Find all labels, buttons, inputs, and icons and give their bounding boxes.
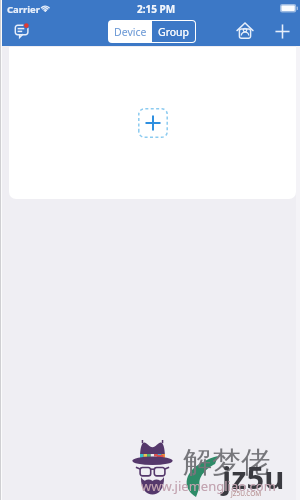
button[interactable]: Group <box>152 21 195 42</box>
staticText: 解梦佬 <box>183 444 270 481</box>
button[interactable]: Add <box>272 21 293 42</box>
staticText: www.jiemengliao.com <box>141 477 276 495</box>
staticText: Device <box>114 25 147 39</box>
staticText: jz5u <box>222 456 285 498</box>
staticText: JZ5U.COM <box>231 489 262 498</box>
button[interactable]: Add device <box>138 108 168 138</box>
staticText: 2:15 PM <box>137 2 176 16</box>
button[interactable]: Home <box>236 22 254 40</box>
staticText: Group <box>158 25 190 39</box>
staticText: Carrier <box>7 3 41 16</box>
button[interactable]: Messages <box>13 23 31 40</box>
button[interactable]: Device <box>109 21 152 42</box>
